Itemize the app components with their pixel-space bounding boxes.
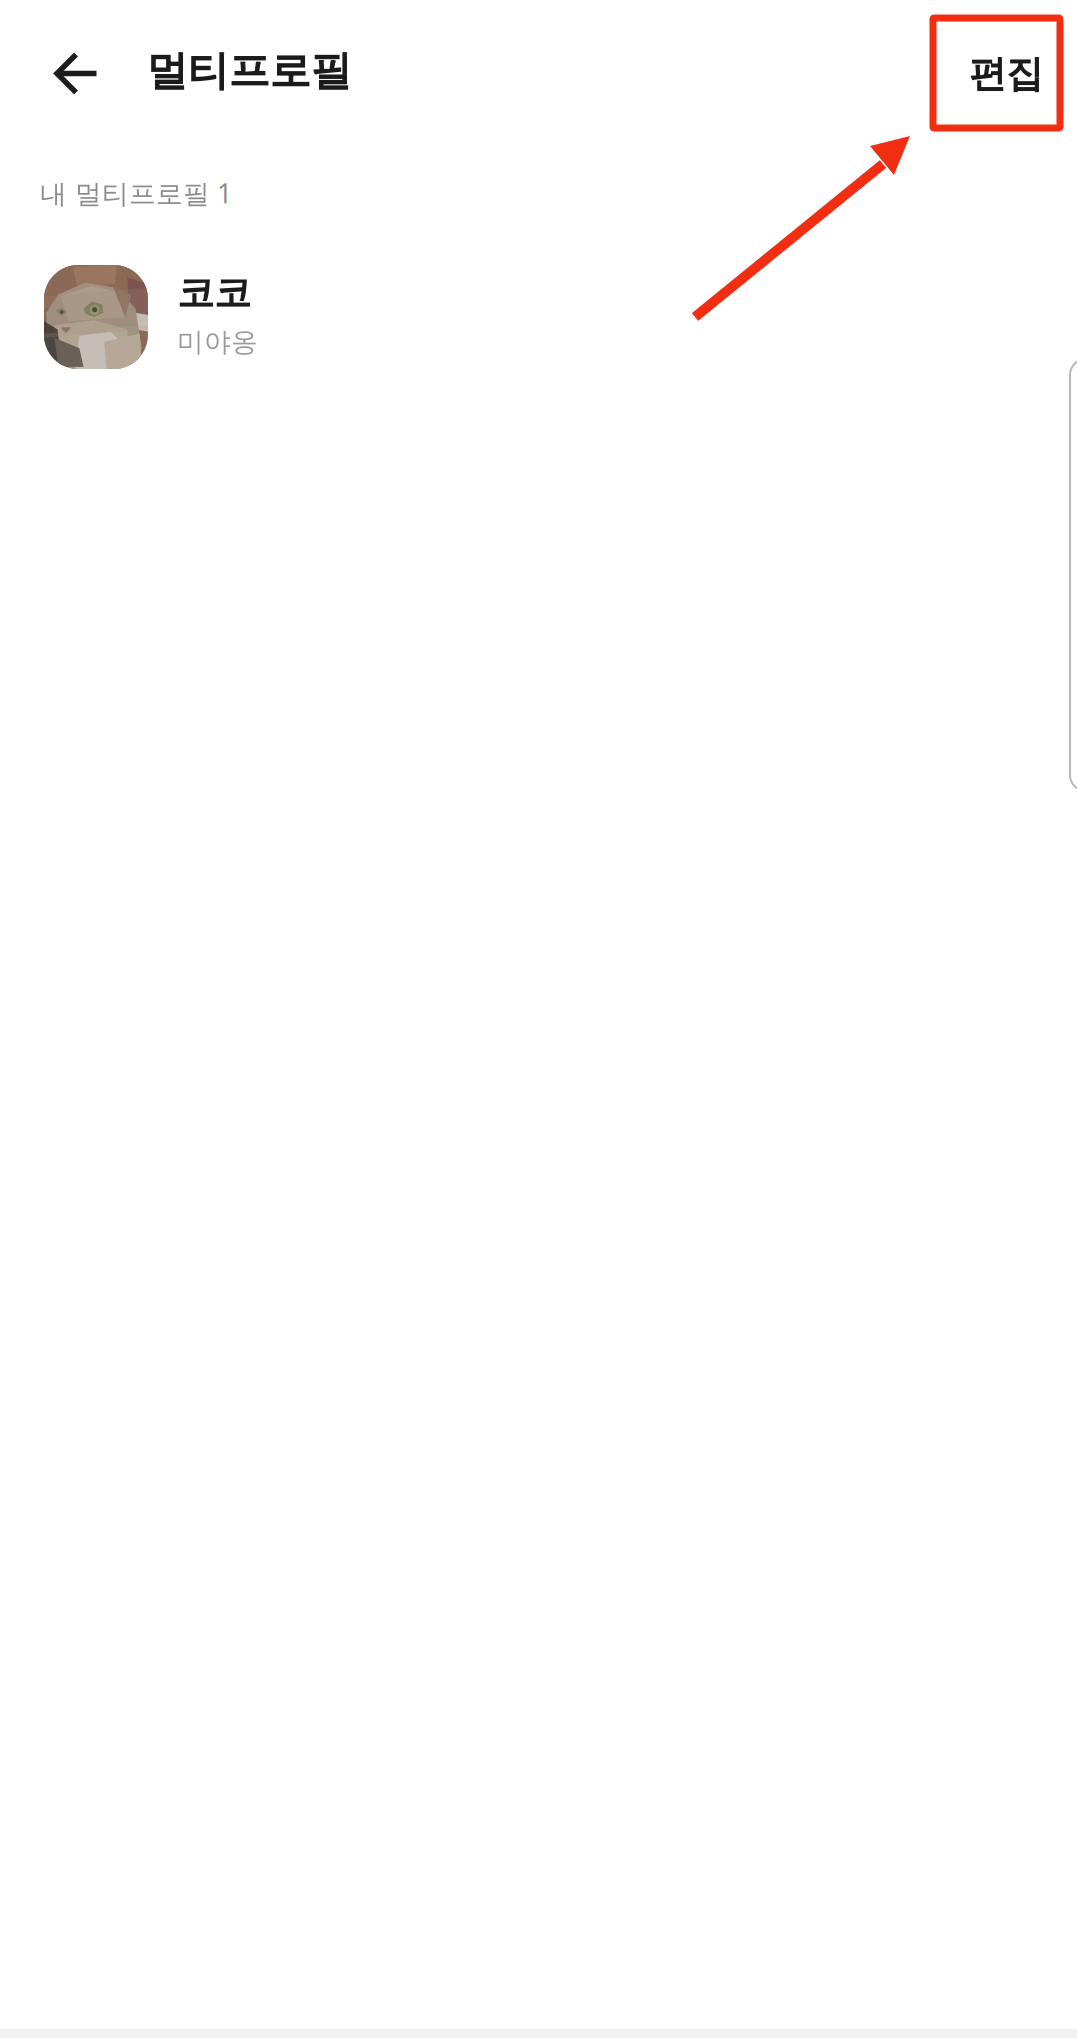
button[interactable]: Back [24, 18, 128, 130]
button[interactable]: 편집 [946, 19, 1066, 129]
staticText: 미야옹 [177, 326, 258, 359]
staticText: 편집 [969, 51, 1043, 97]
staticText: 내 멀티프로필 1 [40, 175, 232, 211]
staticText: 멀티프로필 [146, 46, 351, 96]
staticText: 코코 [177, 270, 251, 316]
button[interactable]: 코코 [44, 265, 1077, 369]
